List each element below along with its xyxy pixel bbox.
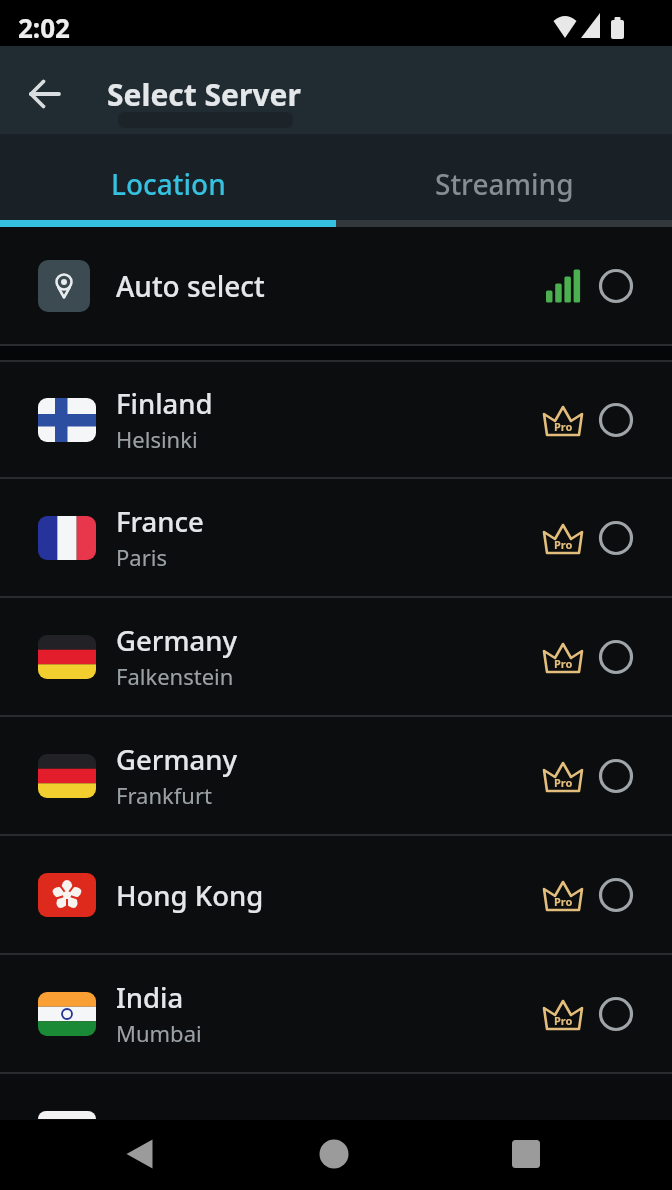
staticText: Paris <box>116 542 167 572</box>
staticText: Pro <box>554 537 573 552</box>
button[interactable]: Hong Kong <box>0 836 672 953</box>
staticText: Pro <box>554 894 573 909</box>
staticText: Germany <box>116 741 237 778</box>
staticText: Hong Kong <box>116 877 264 914</box>
staticText: Auto select <box>116 267 265 305</box>
staticText: Pro <box>554 775 573 790</box>
button[interactable]: Finland <box>0 362 672 477</box>
button[interactable]: Germany <box>0 598 672 715</box>
staticText: Location <box>111 165 226 203</box>
staticText: Pro <box>554 1013 573 1028</box>
staticText: France <box>116 503 204 540</box>
button[interactable]: India <box>0 955 672 1072</box>
staticText: Finland <box>116 385 213 422</box>
button[interactable] <box>22 71 68 117</box>
button[interactable]: Streaming <box>336 134 672 220</box>
button[interactable] <box>114 1128 166 1180</box>
staticText: India <box>116 979 184 1016</box>
staticText: Frankfurt <box>116 780 212 810</box>
staticText: Select Server <box>107 74 301 115</box>
button[interactable]: Location <box>0 134 336 220</box>
staticText: Mumbai <box>116 1018 202 1048</box>
button[interactable] <box>308 1128 360 1180</box>
staticText: Pro <box>554 419 573 434</box>
staticText: Streaming <box>435 165 574 203</box>
button[interactable]: France <box>0 479 672 596</box>
staticText: Pro <box>554 656 573 671</box>
staticText: Helsinki <box>116 424 198 454</box>
button[interactable]: Auto select <box>0 227 672 344</box>
button[interactable]: Germany <box>0 717 672 834</box>
staticText: 2:02 <box>18 10 70 45</box>
button[interactable] <box>500 1128 552 1180</box>
staticText: Falkenstein <box>116 661 234 691</box>
staticText: Germany <box>116 622 237 659</box>
